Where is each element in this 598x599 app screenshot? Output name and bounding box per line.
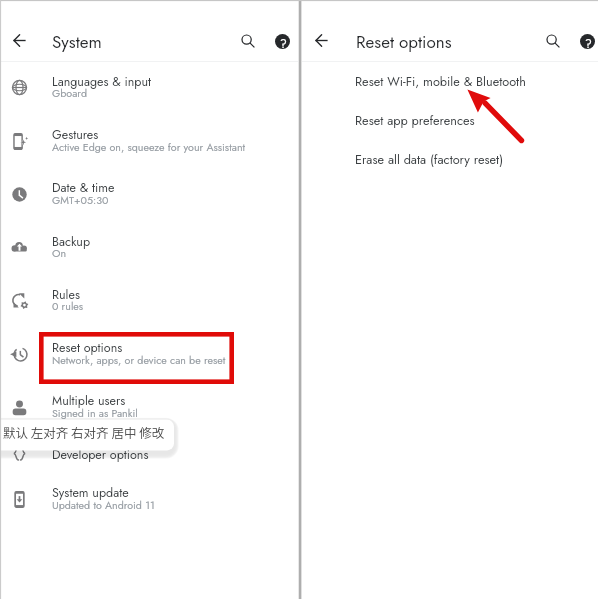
- staticText: Erase all data (factory reset): [355, 150, 504, 168]
- staticText: Date & time: [52, 179, 115, 197]
- button[interactable]: Navigate up: [309, 28, 334, 53]
- staticText: Developer options: [52, 446, 149, 464]
- staticText: Rules: [52, 286, 80, 304]
- button[interactable]: Search: [236, 28, 261, 53]
- staticText: GMT+05:30: [52, 193, 109, 208]
- button[interactable]: Erase all data (factory reset): [302, 141, 598, 180]
- staticText: Signed in as Pankil: [52, 406, 138, 421]
- staticText: Active Edge on, squeeze for your Assista…: [52, 140, 246, 155]
- button[interactable]: Help and feedback: [576, 28, 598, 53]
- staticText: Gestures: [52, 126, 99, 144]
- button[interactable]: Languages & input: [0, 62, 298, 115]
- staticText: Reset app preferences: [355, 111, 475, 129]
- button[interactable]: Gestures: [0, 115, 298, 168]
- button[interactable]: Reset app preferences: [302, 102, 598, 141]
- button[interactable]: Search: [541, 28, 566, 53]
- staticText: Reset Wi-Fi, mobile & Bluetooth: [355, 72, 526, 90]
- staticText: ?: [585, 35, 592, 50]
- staticText: Multiple users: [52, 392, 126, 410]
- button[interactable]: Rules: [0, 274, 298, 327]
- button[interactable]: Navigate up: [7, 28, 32, 53]
- staticText: Reset options: [52, 339, 123, 357]
- staticText: System: [52, 30, 102, 55]
- button[interactable]: Multiple users: [0, 380, 298, 433]
- button[interactable]: Date & time: [0, 168, 298, 221]
- staticText: System update: [52, 484, 129, 502]
- staticText: Reset options: [356, 30, 452, 55]
- button[interactable]: Reset options: [0, 327, 298, 380]
- button[interactable]: Help and feedback: [271, 28, 296, 53]
- staticText: ?: [280, 35, 287, 50]
- button[interactable]: Reset Wi-Fi, mobile & Bluetooth: [302, 63, 598, 102]
- button[interactable]: Developer options: [0, 433, 298, 472]
- staticText: Backup: [52, 233, 91, 251]
- staticText: Updated to Android 11: [52, 498, 155, 513]
- button[interactable]: Backup: [0, 221, 298, 274]
- staticText: Languages & input: [52, 73, 151, 91]
- staticText: 0 rules: [52, 299, 84, 314]
- staticText: 默认 左对齐 右对齐 居中 修改: [3, 423, 165, 441]
- button[interactable]: System update: [0, 472, 298, 525]
- staticText: On: [52, 246, 67, 261]
- staticText: Gboard: [52, 86, 88, 101]
- staticText: Network, apps, or device can be reset: [52, 353, 226, 368]
